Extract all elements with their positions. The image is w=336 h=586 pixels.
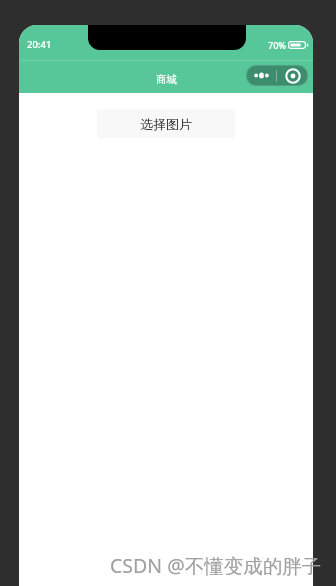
button[interactable]: More	[246, 65, 276, 86]
staticText: CSDN @不懂变成的胖子	[110, 552, 322, 579]
staticText: 商城	[156, 73, 177, 86]
staticText: 选择图片	[140, 116, 192, 132]
button[interactable]: Close mini program	[277, 65, 308, 86]
staticText: 70%	[268, 39, 286, 51]
button[interactable]: 选择图片	[97, 109, 235, 138]
staticText: 20:41	[27, 38, 52, 51]
